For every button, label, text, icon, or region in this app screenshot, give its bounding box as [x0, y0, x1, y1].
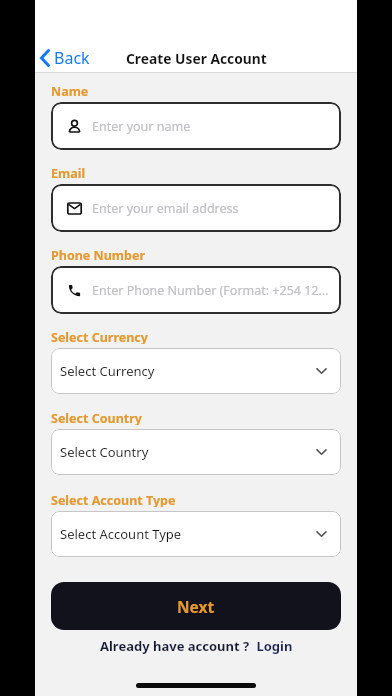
staticText: Select Country [60, 443, 149, 461]
staticText: Enter your email address [92, 200, 239, 217]
staticText: Select Account Type [60, 525, 182, 543]
button[interactable]: Select Account Type [51, 511, 341, 557]
button[interactable]: Already have account ? [51, 635, 341, 657]
button[interactable]: Enter your email address [51, 184, 341, 232]
button[interactable]: Next [51, 582, 341, 630]
staticText: Select Account Type [51, 492, 176, 507]
staticText: Email [51, 165, 86, 180]
button[interactable]: Back [39, 47, 90, 69]
staticText: Select Country [51, 410, 142, 425]
staticText: Next [177, 596, 215, 617]
staticText: Enter Phone Number (Format: +254 123 456… [92, 282, 333, 299]
button[interactable]: Enter Phone Number (Format: +254 123 456… [51, 266, 341, 314]
staticText: Phone Number [51, 247, 145, 262]
staticText: Create User Account [126, 49, 267, 68]
button[interactable]: Enter your name [51, 102, 341, 150]
button[interactable]: Select Country [51, 429, 341, 475]
staticText: Select Currency [60, 362, 155, 380]
staticText: Select Currency [51, 329, 148, 344]
staticText: Enter your name [92, 118, 191, 135]
staticText: Already have account ? [100, 637, 253, 655]
staticText: Name [51, 83, 89, 98]
button[interactable]: Select Currency [51, 348, 341, 394]
staticText: Login [253, 637, 293, 655]
staticText: Back [54, 47, 90, 69]
